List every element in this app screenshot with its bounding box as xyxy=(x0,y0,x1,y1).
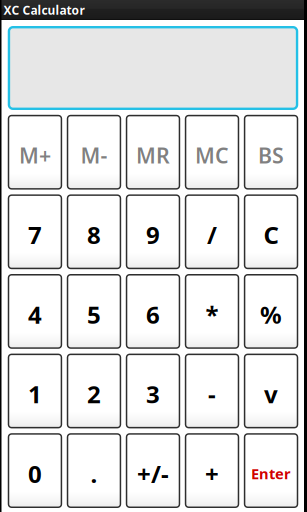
button[interactable]: +/- xyxy=(126,433,180,508)
staticText: BS xyxy=(258,141,284,169)
button[interactable]: M- xyxy=(67,115,121,190)
button[interactable]: BS xyxy=(244,115,298,190)
staticText: . xyxy=(90,458,97,490)
button[interactable]: 1 xyxy=(8,354,62,428)
button[interactable]: + xyxy=(185,433,239,508)
button[interactable]: 4 xyxy=(8,274,62,349)
button[interactable]: MR xyxy=(126,115,180,190)
staticText: Enter xyxy=(251,464,291,483)
button[interactable]: v xyxy=(244,354,298,428)
button[interactable]: 7 xyxy=(8,194,62,269)
staticText: MC xyxy=(195,141,229,169)
button[interactable]: % xyxy=(244,274,298,349)
button[interactable]: 3 xyxy=(126,354,180,428)
staticText: XC Calculator xyxy=(3,2,84,18)
button[interactable]: 6 xyxy=(126,274,180,349)
staticText: / xyxy=(207,219,217,251)
button[interactable]: - xyxy=(185,354,239,428)
staticText: 2 xyxy=(87,378,101,410)
staticText: - xyxy=(208,378,216,410)
staticText: 8 xyxy=(87,219,101,251)
button[interactable]: 8 xyxy=(67,194,121,269)
staticText: M- xyxy=(80,141,107,169)
staticText: 0 xyxy=(28,458,42,490)
staticText: * xyxy=(205,298,218,330)
button[interactable]: 0 xyxy=(8,433,62,508)
staticText: M+ xyxy=(19,141,51,169)
staticText: C xyxy=(263,219,278,251)
button[interactable]: C xyxy=(244,194,298,269)
button[interactable]: 2 xyxy=(67,354,121,428)
button[interactable]: . xyxy=(67,433,121,508)
staticText: 1 xyxy=(28,378,42,410)
staticText: 3 xyxy=(146,378,160,410)
button[interactable]: Enter xyxy=(244,433,298,508)
staticText: 4 xyxy=(28,298,42,330)
staticText: 9 xyxy=(146,219,160,251)
button[interactable]: MC xyxy=(185,115,239,190)
staticText: v xyxy=(264,378,278,410)
staticText: MR xyxy=(136,141,170,169)
staticText: 7 xyxy=(28,219,42,251)
staticText: % xyxy=(260,298,282,330)
button[interactable]: * xyxy=(185,274,239,349)
button[interactable]: M+ xyxy=(8,115,62,190)
staticText: +/- xyxy=(137,458,169,490)
button[interactable]: 9 xyxy=(126,194,180,269)
staticText: + xyxy=(205,458,219,490)
staticText: 6 xyxy=(146,298,160,330)
staticText: 5 xyxy=(87,298,101,330)
button[interactable]: / xyxy=(185,194,239,269)
button[interactable]: 5 xyxy=(67,274,121,349)
